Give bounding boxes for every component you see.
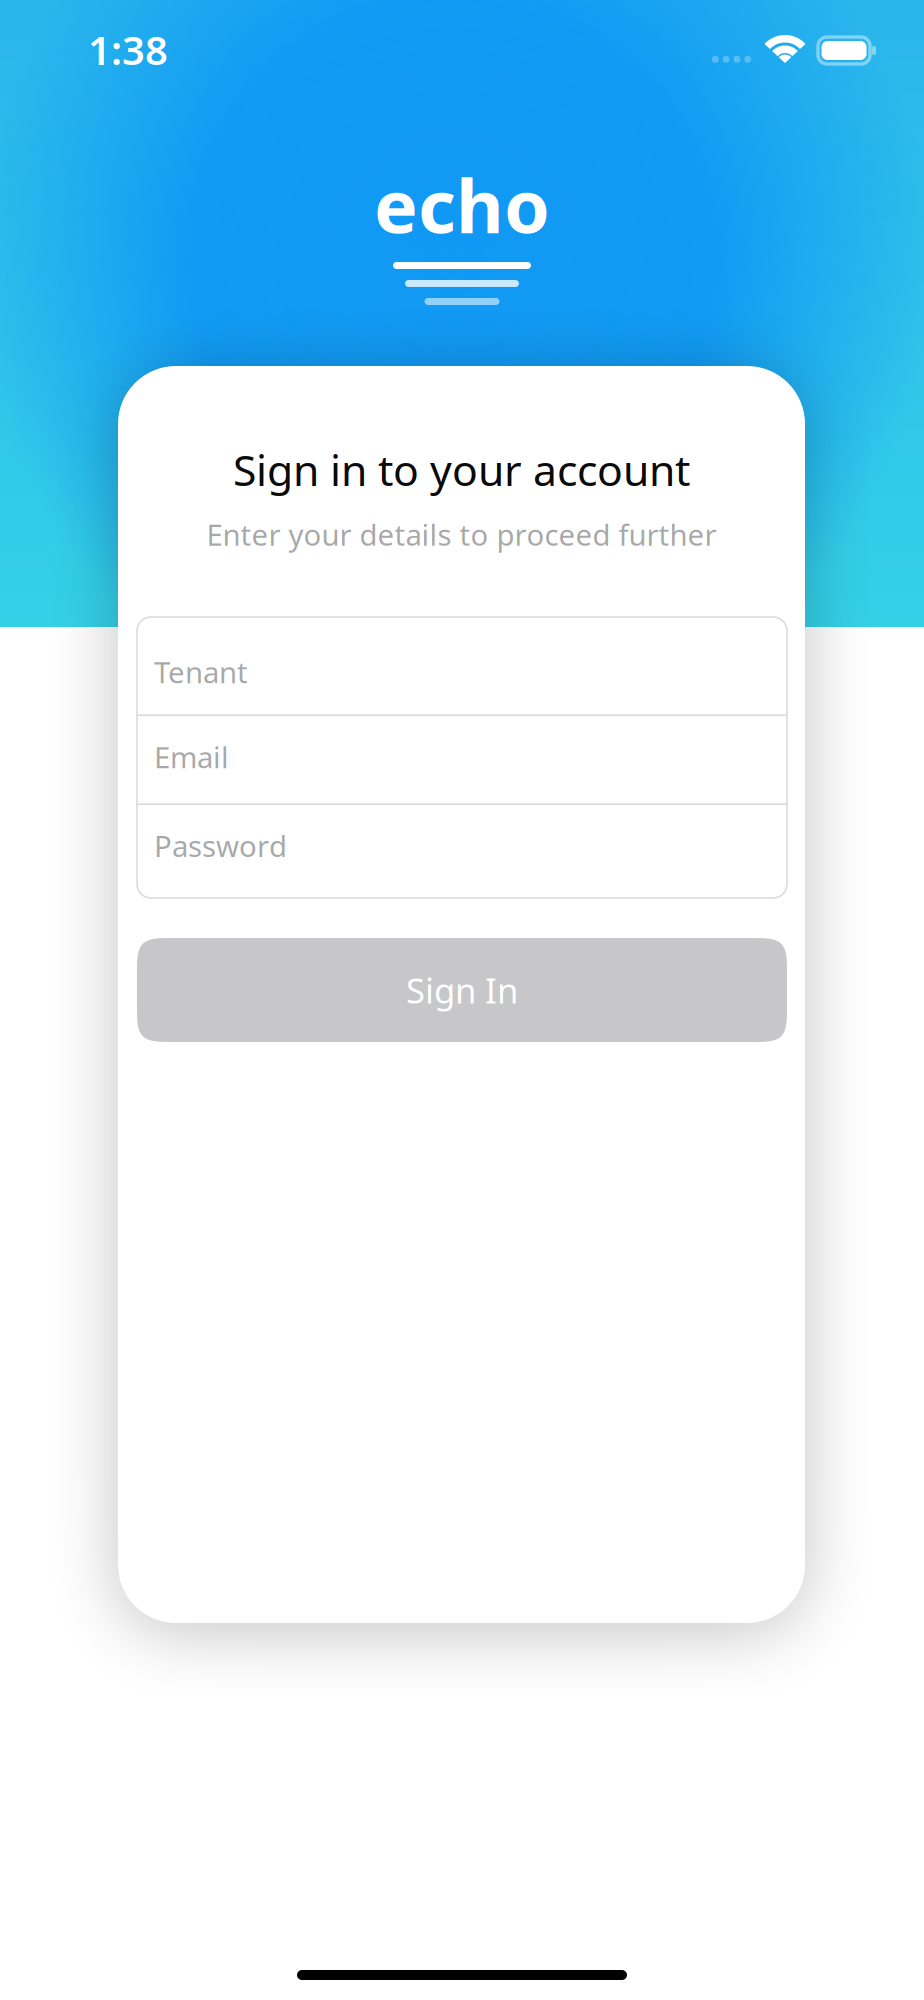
staticText: Sign In [406,967,518,1013]
staticText: Email [154,737,229,776]
staticText: Tenant [154,652,248,691]
staticText: echo [374,156,550,253]
button[interactable]: Sign In [137,938,787,1042]
staticText: 1:38 [88,23,168,76]
staticText: Sign in to your account [233,441,690,498]
button[interactable]: Tenant [137,617,787,714]
staticText: Password [154,826,287,865]
button[interactable]: Password [137,805,787,898]
staticText: Enter your details to proceed further [206,515,716,554]
button[interactable]: Email [137,716,787,803]
